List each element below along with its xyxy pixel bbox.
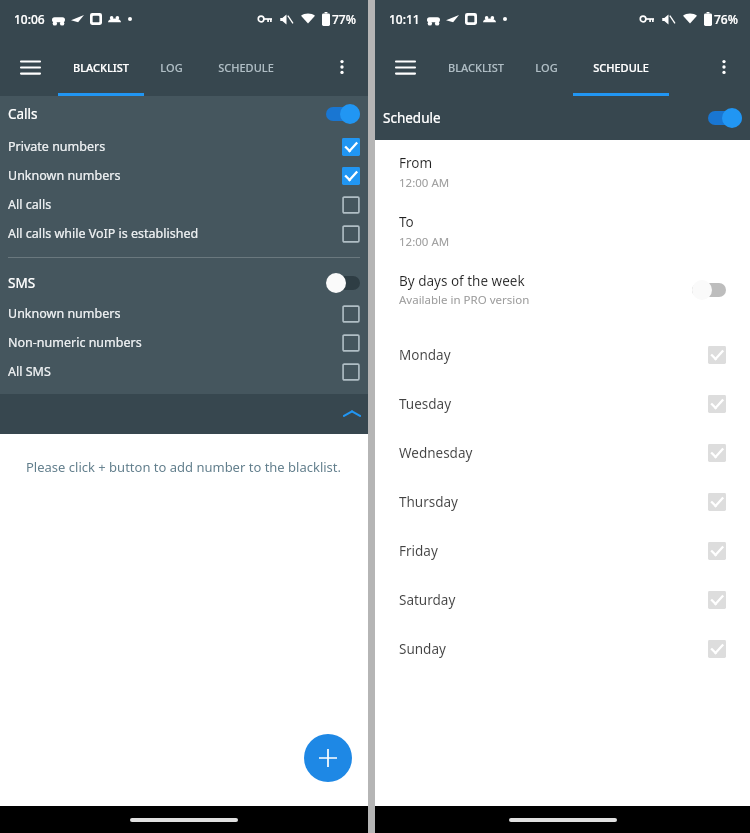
button[interactable]: Thursday xyxy=(375,477,750,526)
button[interactable]: SMS xyxy=(0,267,368,299)
staticText: Friday xyxy=(399,542,438,560)
staticText: SCHEDULE xyxy=(593,60,649,75)
staticText: Tuesday xyxy=(399,395,452,413)
button[interactable]: All calls xyxy=(0,190,368,219)
staticText: Thursday xyxy=(399,493,458,511)
staticText: Please click + button to add number to t… xyxy=(26,458,342,476)
button[interactable]: Non-numeric numbers xyxy=(0,328,368,357)
staticText: LOG xyxy=(535,60,558,75)
staticText: Unknown numbers xyxy=(8,167,121,184)
button[interactable]: More options xyxy=(704,47,744,87)
staticText: All calls while VoIP is established xyxy=(8,225,199,242)
button[interactable]: BLACKLIST xyxy=(58,38,144,96)
button[interactable]: Sunday xyxy=(375,624,750,673)
staticText: 12:00 AM xyxy=(399,234,450,250)
button[interactable]: By days of the week xyxy=(375,272,750,308)
button[interactable]: Private numbers xyxy=(0,132,368,161)
staticText: Wednesday xyxy=(399,444,473,462)
staticText: Sunday xyxy=(399,640,446,658)
staticText: 10:06 xyxy=(14,11,45,27)
staticText: SCHEDULE xyxy=(218,60,274,75)
button[interactable]: Open navigation menu xyxy=(383,45,427,89)
staticText: 12:00 AM xyxy=(399,175,450,191)
staticText: BLACKLIST xyxy=(73,60,129,75)
button[interactable]: SCHEDULE xyxy=(198,38,294,96)
staticText: Available in PRO version xyxy=(399,292,530,308)
button[interactable]: LOG xyxy=(523,38,569,96)
button[interactable]: Unknown numbers xyxy=(0,161,368,190)
staticText: Private numbers xyxy=(8,138,106,155)
button[interactable]: Wednesday xyxy=(375,428,750,477)
staticText: Schedule xyxy=(383,109,441,127)
staticText: 10:11 xyxy=(389,11,420,27)
button[interactable]: To xyxy=(375,213,750,250)
button[interactable]: Open navigation menu xyxy=(8,45,52,89)
button[interactable]: Unknown numbers xyxy=(0,299,368,328)
staticText: 77% xyxy=(332,11,356,27)
staticText: All SMS xyxy=(8,363,51,380)
staticText: From xyxy=(399,154,433,172)
staticText: To xyxy=(399,213,414,231)
button[interactable]: Friday xyxy=(375,526,750,575)
button[interactable]: All calls while VoIP is established xyxy=(0,219,368,248)
button[interactable]: Monday xyxy=(375,330,750,379)
staticText: SMS xyxy=(8,274,36,292)
staticText: Monday xyxy=(399,346,451,364)
button[interactable]: From xyxy=(375,154,750,191)
button[interactable]: BLACKLIST xyxy=(433,38,519,96)
staticText: By days of the week xyxy=(399,272,525,290)
staticText: BLACKLIST xyxy=(448,60,504,75)
staticText: All calls xyxy=(8,196,52,213)
button[interactable]: Saturday xyxy=(375,575,750,624)
button[interactable]: Tuesday xyxy=(375,379,750,428)
button[interactable]: Calls xyxy=(0,96,368,132)
staticText: LOG xyxy=(160,60,183,75)
button[interactable]: More options xyxy=(322,47,362,87)
button[interactable]: SCHEDULE xyxy=(573,38,669,96)
button[interactable]: Add number xyxy=(304,734,352,782)
button[interactable]: Schedule xyxy=(375,96,750,140)
button[interactable]: LOG xyxy=(148,38,194,96)
staticText: Saturday xyxy=(399,591,456,609)
button[interactable]: Collapse filters xyxy=(0,394,368,434)
staticText: Calls xyxy=(8,105,38,123)
staticText: Unknown numbers xyxy=(8,305,121,322)
staticText: 76% xyxy=(714,11,738,27)
button[interactable]: All SMS xyxy=(0,357,368,386)
staticText: Non-numeric numbers xyxy=(8,334,142,351)
